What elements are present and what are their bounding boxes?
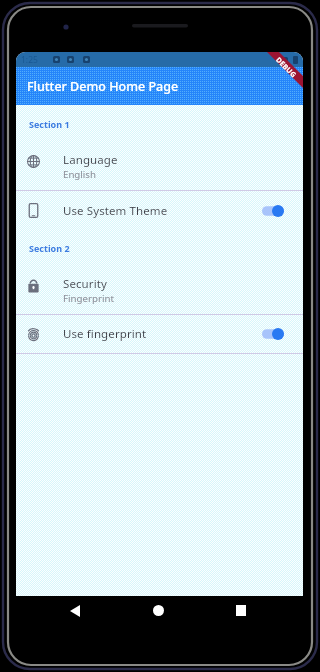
button[interactable]: Security <box>16 266 303 314</box>
staticText: Use System Theme <box>63 203 262 219</box>
button[interactable]: Toggle setting <box>262 204 284 218</box>
button[interactable]: Home <box>153 605 164 616</box>
staticText: 1:25 <box>21 54 38 66</box>
staticText: Use fingerprint <box>63 326 262 342</box>
button[interactable]: Back <box>70 605 80 617</box>
button[interactable]: Language <box>16 142 303 190</box>
staticText: English <box>63 168 96 181</box>
button[interactable]: Use fingerprint <box>16 315 303 353</box>
staticText: DEBUG <box>273 55 299 81</box>
staticText: Fingerprint <box>63 292 114 305</box>
staticText: Section 2 <box>29 242 70 254</box>
staticText: Section 1 <box>29 118 70 130</box>
staticText: Flutter Demo Home Page <box>27 78 179 95</box>
button[interactable]: Use System Theme <box>16 191 303 230</box>
staticText: Language <box>63 152 118 168</box>
button[interactable]: Toggle setting <box>262 327 284 341</box>
staticText: Security <box>63 276 107 292</box>
